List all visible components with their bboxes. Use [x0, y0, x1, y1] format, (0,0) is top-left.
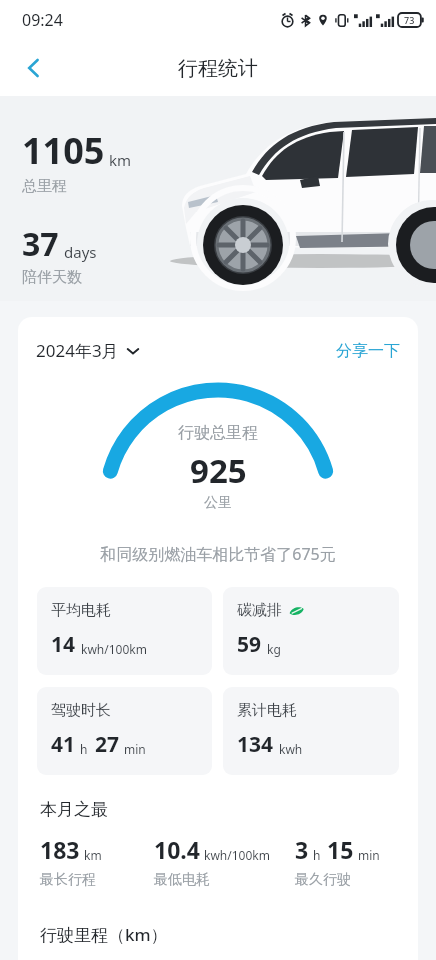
staticText: min	[124, 741, 146, 757]
staticText: 27	[95, 730, 120, 759]
staticText: min	[358, 847, 380, 863]
staticText: kwh	[279, 741, 303, 757]
button[interactable]: 碳减排	[223, 587, 399, 675]
staticText: 10.4	[154, 834, 200, 865]
button[interactable]: 分享一下	[336, 341, 400, 361]
staticText: kwh/100km	[81, 641, 147, 657]
staticText: h	[313, 847, 321, 863]
staticText: kg	[267, 641, 281, 657]
staticText: 碳减排	[237, 601, 282, 620]
staticText: km	[84, 847, 102, 863]
staticText: 73	[404, 14, 415, 26]
staticText: 公里	[204, 494, 232, 512]
button[interactable]: 2024年3月	[36, 339, 140, 362]
staticText: 总里程	[22, 177, 67, 196]
button[interactable]: 驾驶时长	[37, 687, 212, 775]
staticText: 3	[295, 834, 309, 865]
staticText: 925	[190, 448, 247, 493]
staticText: 183	[40, 834, 80, 865]
staticText: 09:24	[22, 9, 63, 31]
button[interactable]: 平均电耗	[37, 587, 212, 675]
staticText: 37	[22, 222, 59, 266]
staticText: 最低电耗	[154, 871, 210, 889]
staticText: 本月之最	[40, 799, 108, 820]
button[interactable]: Back	[12, 46, 56, 90]
staticText: 行驶里程（km）	[40, 923, 168, 946]
staticText: 行程统计	[178, 56, 258, 81]
staticText: 14	[51, 630, 76, 659]
staticText: 15	[327, 834, 354, 865]
staticText: 59	[237, 630, 262, 659]
staticText: 累计电耗	[237, 701, 297, 720]
staticText: kwh/100km	[204, 847, 270, 863]
staticText: 最长行程	[40, 871, 96, 889]
staticText: 134	[237, 730, 274, 759]
staticText: 驾驶时长	[51, 701, 111, 720]
staticText: 最久行驶	[295, 871, 351, 889]
staticText: km	[109, 150, 132, 170]
staticText: 41	[51, 730, 76, 759]
staticText: 平均电耗	[51, 601, 111, 620]
staticText: 2024年3月	[36, 339, 119, 362]
button[interactable]: 累计电耗	[223, 687, 399, 775]
staticText: 陪伴天数	[22, 268, 82, 287]
staticText: 和同级别燃油车相比节省了675元	[18, 543, 418, 565]
staticText: 分享一下	[336, 341, 400, 361]
staticText: h	[80, 741, 88, 757]
staticText: 1105	[22, 126, 105, 175]
staticText: days	[64, 242, 97, 262]
staticText: 行驶总里程	[178, 423, 258, 443]
